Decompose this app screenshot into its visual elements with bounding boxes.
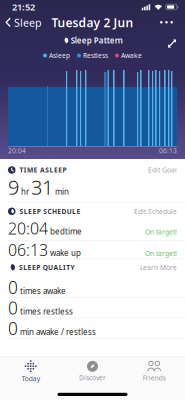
staticText: Tuesday 2 Jun [51, 14, 133, 30]
staticText: Restless [83, 51, 108, 60]
staticText: Today [22, 374, 40, 383]
staticText: Sleep [14, 15, 42, 30]
staticText: Discover [79, 373, 106, 382]
staticText: Awake [121, 51, 142, 60]
button[interactable]: 20:04 bedtime [0, 216, 185, 240]
staticText: TIME ASLEEP [19, 166, 66, 174]
staticText: 06:13 [159, 146, 177, 155]
button[interactable]: 06:13 wake up [0, 241, 185, 259]
staticText: 21:52 [12, 1, 35, 13]
staticText: Sleep Pattern [71, 35, 123, 46]
button[interactable]: Learn More [140, 263, 177, 272]
button[interactable]: Expand chart [167, 32, 185, 48]
staticText: Edit Schedule [134, 207, 177, 216]
staticText: Friends [143, 374, 166, 382]
staticText: 20:04 [8, 146, 26, 155]
button[interactable]: Edit Goal [148, 166, 177, 174]
staticText: 0 min awake / restless [8, 317, 96, 340]
staticText: SLEEP SCHEDULE [19, 207, 80, 216]
button[interactable]: Edit Schedule [134, 207, 177, 216]
staticText: SLEEP QUALITY [19, 263, 75, 272]
button[interactable]: Back [0, 15, 42, 30]
button[interactable]: Discover [62, 358, 123, 382]
staticText: 0 times restless [8, 296, 73, 319]
staticText: Asleep [49, 51, 70, 60]
staticText: Learn More [140, 263, 177, 272]
staticText: 9 hr 31 min [8, 174, 69, 200]
button[interactable]: Today [0, 357, 62, 383]
staticText: Edit Goal [148, 166, 177, 174]
staticText: 0 times awake [8, 276, 66, 299]
staticText: On target! [145, 227, 177, 236]
staticText: 06:13 wake up [8, 239, 81, 260]
button[interactable]: Friends [123, 358, 185, 382]
staticText: On target! [145, 249, 177, 258]
staticText: 20:04 bedtime [8, 218, 82, 239]
button[interactable]: More [160, 17, 185, 28]
